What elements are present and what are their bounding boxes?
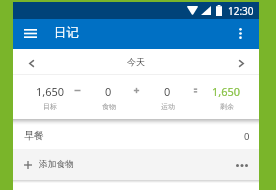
button[interactable]: 早餐 <box>13 125 259 149</box>
staticText: 12:30 <box>228 4 254 18</box>
staticText: 剩余 <box>220 102 234 111</box>
staticText: 早餐 <box>24 129 44 142</box>
staticText: 添加食物 <box>39 159 74 170</box>
button[interactable]: Open navigation drawer <box>16 19 44 47</box>
staticText: 0 <box>244 130 250 143</box>
staticText: 1,650 <box>212 84 241 99</box>
staticText: 0 <box>105 84 112 99</box>
button[interactable]: Next day <box>229 51 253 75</box>
button[interactable]: Meal options <box>233 156 251 174</box>
button[interactable]: 今天 <box>121 53 151 70</box>
staticText: 日记 <box>54 25 79 41</box>
staticText: 运动 <box>161 102 175 111</box>
staticText: 0 <box>164 84 171 99</box>
staticText: 今天 <box>127 56 145 67</box>
staticText: 1,650 <box>36 84 65 99</box>
button[interactable]: More options <box>227 20 253 46</box>
staticText: 目标 <box>43 102 57 111</box>
button[interactable]: Previous day <box>19 51 43 75</box>
button[interactable]: 添加食物 <box>13 149 259 180</box>
staticText: 食物 <box>102 102 116 111</box>
